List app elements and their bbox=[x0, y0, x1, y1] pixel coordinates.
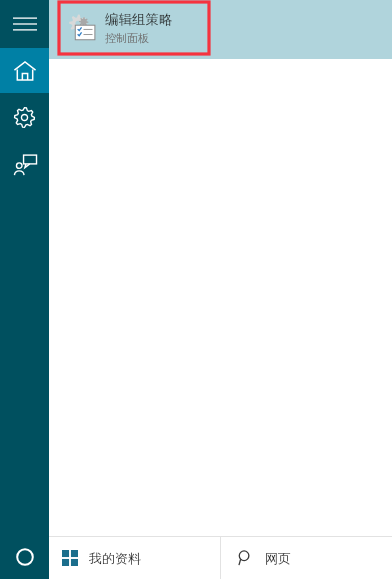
staticText: 网页 bbox=[265, 550, 291, 566]
button[interactable]: 网页 bbox=[221, 537, 392, 579]
button[interactable]: Settings bbox=[0, 93, 49, 141]
button[interactable]: Menu bbox=[0, 0, 49, 48]
button[interactable]: Home bbox=[0, 48, 49, 93]
button[interactable]: 编辑组策略 bbox=[59, 2, 209, 54]
button[interactable]: Cortana bbox=[0, 534, 49, 579]
staticText: 编辑组策略 bbox=[105, 11, 173, 28]
button[interactable]: Feedback bbox=[0, 141, 49, 189]
button[interactable]: 我的资料 bbox=[49, 537, 220, 579]
staticText: 控制面板 bbox=[105, 31, 149, 45]
staticText: 我的资料 bbox=[89, 550, 141, 566]
